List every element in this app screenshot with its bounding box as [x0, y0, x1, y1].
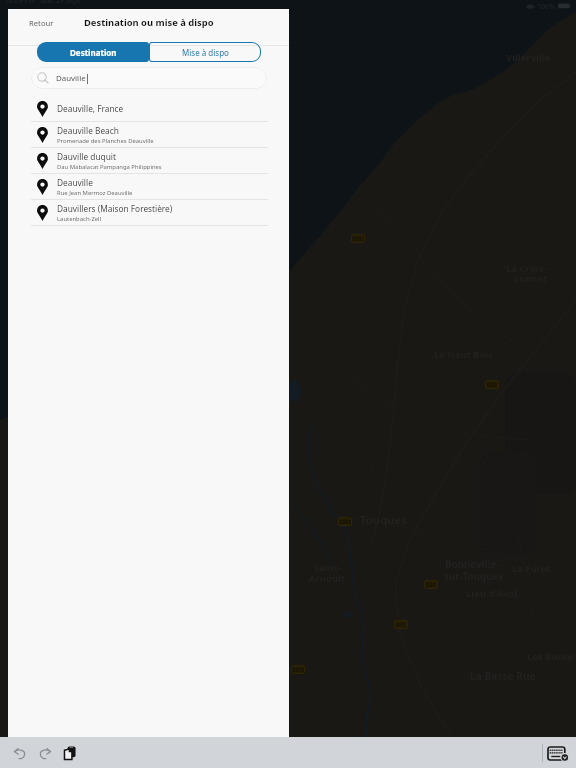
- button[interactable]: Deauville, France: [8, 96, 289, 122]
- staticText: Dauville duquit: [57, 151, 116, 162]
- staticText: Deauville Beach: [57, 125, 119, 136]
- button[interactable]: Redo: [34, 742, 56, 764]
- staticText: Deauville: [57, 177, 93, 188]
- staticText: Promenade des Planches Deauville: [57, 137, 154, 145]
- button[interactable]: Retour: [23, 14, 60, 32]
- button[interactable]: Destination: [37, 42, 149, 62]
- button[interactable]: Dauville duquit: [8, 148, 289, 174]
- staticText: D288: [339, 518, 352, 525]
- staticText: Sonnet: [514, 272, 548, 285]
- staticText: Les Borde: [527, 650, 574, 663]
- staticText: Mise à dispo: [182, 47, 229, 58]
- staticText: A13: [396, 621, 406, 628]
- staticText: 100%: [537, 1, 556, 11]
- staticText: La Basse Rue: [470, 669, 536, 683]
- button[interactable]: Paste: [59, 742, 81, 764]
- staticText: Lautenbach-Zell: [57, 215, 102, 223]
- staticText: Deauville, France: [57, 103, 124, 114]
- button[interactable]: Deauville: [8, 174, 289, 200]
- staticText: Villerville: [506, 51, 551, 64]
- staticText: Lieu d'Avol: [466, 587, 518, 600]
- staticText: Destination ou mise à dispo: [84, 16, 214, 29]
- staticText: D27: [426, 581, 436, 588]
- button[interactable]: Hide keyboard: [546, 741, 570, 765]
- staticText: sur-Touques: [444, 570, 504, 583]
- staticText: Destination: [70, 47, 117, 58]
- staticText: Rue Jean Mermoz Deauville: [57, 189, 133, 197]
- button[interactable]: Dauville: [31, 67, 267, 89]
- staticText: Dauville: [56, 73, 86, 84]
- staticText: La Forêt: [512, 562, 551, 575]
- button[interactable]: Deauville Beach: [8, 122, 289, 148]
- staticText: Arnoult: [309, 572, 346, 585]
- staticText: Dau Mabalacat Pampanga Philippines: [57, 163, 162, 171]
- staticText: Retour: [29, 18, 54, 28]
- staticText: D513: [352, 235, 365, 242]
- staticText: Dauvillers (Maison Forestière): [57, 203, 173, 214]
- staticText: D579: [292, 666, 305, 673]
- button[interactable]: Undo: [9, 742, 31, 764]
- staticText: Saint-: [314, 561, 342, 574]
- button[interactable]: Mise à dispo: [149, 42, 261, 62]
- staticText: D62: [487, 381, 497, 388]
- staticText: Bonneville-: [445, 558, 500, 571]
- staticText: Touques: [360, 512, 408, 527]
- button[interactable]: Dauvillers (Maison Forestière): [8, 200, 289, 226]
- staticText: Le Haut Bois: [434, 348, 494, 361]
- staticText: 10:09 PM Mar. 29 sept.: [5, 0, 82, 5]
